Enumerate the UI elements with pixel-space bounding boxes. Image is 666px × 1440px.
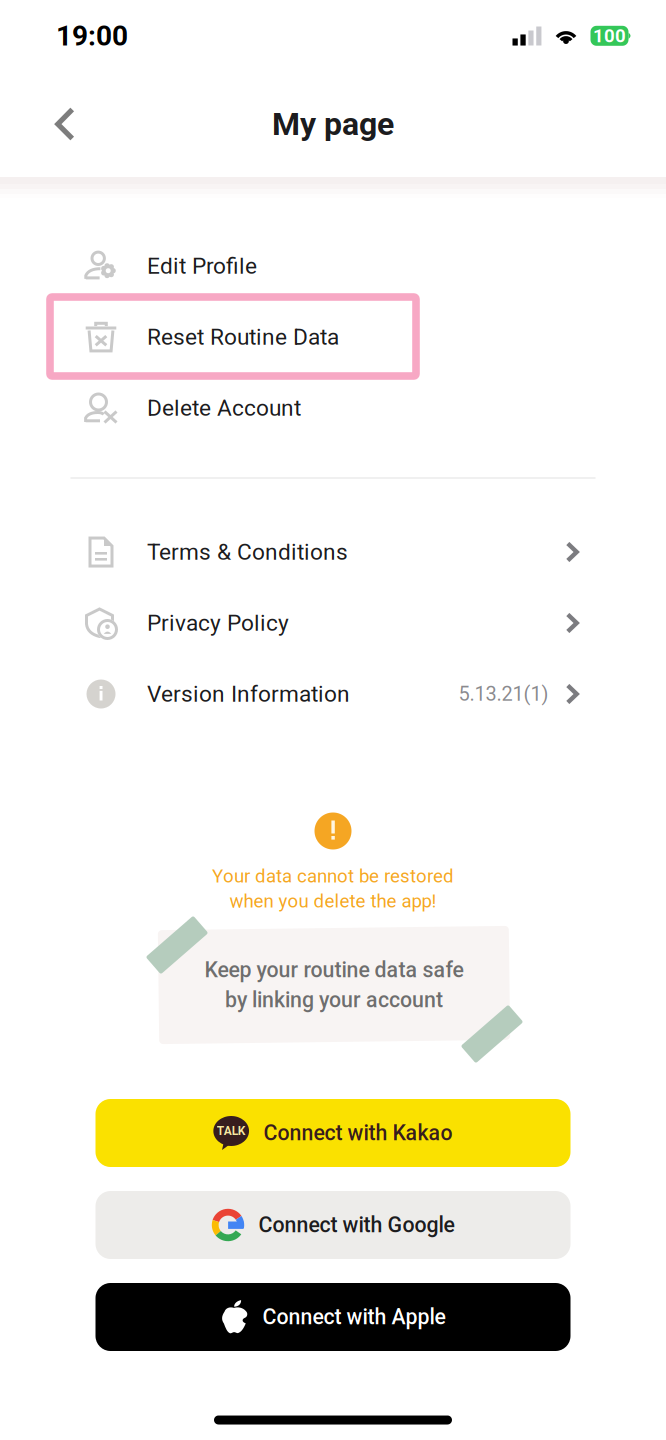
button[interactable]: TALK <box>95 1099 570 1167</box>
staticText: Keep your routine data safe <box>204 957 463 982</box>
button[interactable]: Delete Account <box>0 372 666 443</box>
staticText: Version Information <box>147 681 350 707</box>
staticText: Edit Profile <box>147 253 257 279</box>
button[interactable]: Connect with Google <box>95 1191 570 1259</box>
staticText: TALK <box>217 1124 246 1138</box>
staticText: Your data cannot be restored <box>212 865 454 887</box>
staticText: Delete Account <box>147 395 301 421</box>
staticText: Privacy Policy <box>147 610 289 636</box>
button[interactable]: Privacy Policy <box>0 587 666 658</box>
staticText: by linking your account <box>225 987 443 1012</box>
staticText: 19:00 <box>56 20 128 52</box>
button[interactable]: Terms & Conditions <box>0 516 666 587</box>
staticText: Connect with Google <box>258 1212 454 1237</box>
button[interactable]: Version Information <box>0 658 666 729</box>
staticText: 100 <box>593 25 626 47</box>
staticText: Terms & Conditions <box>147 539 348 565</box>
staticText: 5.13.21(1) <box>458 682 548 706</box>
button[interactable]: Back <box>35 87 95 161</box>
staticText: when you delete the app! <box>229 890 436 912</box>
staticText: Reset Routine Data <box>147 324 339 350</box>
staticText: My page <box>272 105 394 143</box>
staticText: Connect with Apple <box>262 1304 445 1329</box>
button[interactable]: Reset Routine Data <box>0 301 666 372</box>
button[interactable]: Edit Profile <box>0 230 666 301</box>
button[interactable]: Connect with Apple <box>95 1283 570 1351</box>
staticText: Connect with Kakao <box>263 1120 452 1145</box>
